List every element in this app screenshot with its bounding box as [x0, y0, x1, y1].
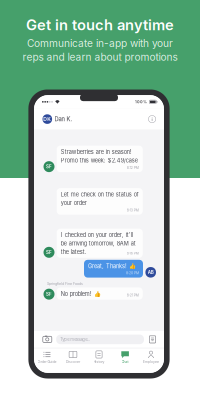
staticText: Get in touch anytime [26, 16, 174, 34]
staticText: Employee [143, 360, 159, 364]
staticText: History [93, 360, 104, 364]
staticText: SF [46, 164, 52, 169]
staticText: reps and learn about promotions [22, 51, 177, 63]
staticText: Dan K. [54, 116, 72, 122]
staticText: Strawberries are in season! [61, 149, 132, 155]
staticText: Type message... [60, 337, 90, 342]
staticText: Great, Thanks! 👍 [88, 263, 136, 270]
staticText: 8:13 PM [127, 208, 139, 212]
staticText: 100% [135, 99, 147, 104]
staticText: the latest. [61, 249, 87, 255]
button[interactable]: Conversation info [146, 113, 158, 125]
button[interactable]: DK [42, 111, 75, 127]
staticText: 8:16 PM [127, 251, 139, 255]
staticText: 8:20 PM [126, 271, 139, 275]
button[interactable]: Chat [112, 348, 138, 366]
staticText: Springfield Fine Foods [47, 282, 83, 286]
staticText: SF [46, 250, 52, 255]
staticText: Let me check on the status of [61, 191, 139, 198]
staticText: be arriving tomorrow, 8AM at [61, 240, 136, 247]
staticText: AB [148, 270, 154, 275]
staticText: No problem! 👍 [61, 290, 101, 297]
staticText: 8:12 PM [127, 166, 139, 170]
button[interactable]: Order Guide [34, 348, 60, 366]
staticText: Promo this week: $2.49/case [61, 157, 138, 164]
button[interactable]: Camera [43, 336, 52, 343]
staticText: your order [61, 200, 87, 206]
staticText: DK [43, 116, 51, 122]
staticText: SF [46, 291, 52, 297]
button[interactable]: History [86, 348, 112, 366]
button[interactable]: Discover [60, 348, 86, 366]
staticText: 8:21 PM [127, 293, 139, 297]
staticText: I checked on your order, it'll [61, 232, 133, 238]
staticText: Discover [66, 360, 80, 364]
staticText: Chat [121, 360, 128, 364]
button[interactable]: Order notes [149, 336, 156, 343]
staticText: Order Guide [37, 360, 56, 364]
staticText: Communicate in-app with your [27, 37, 173, 49]
button[interactable]: Employee [138, 348, 164, 366]
